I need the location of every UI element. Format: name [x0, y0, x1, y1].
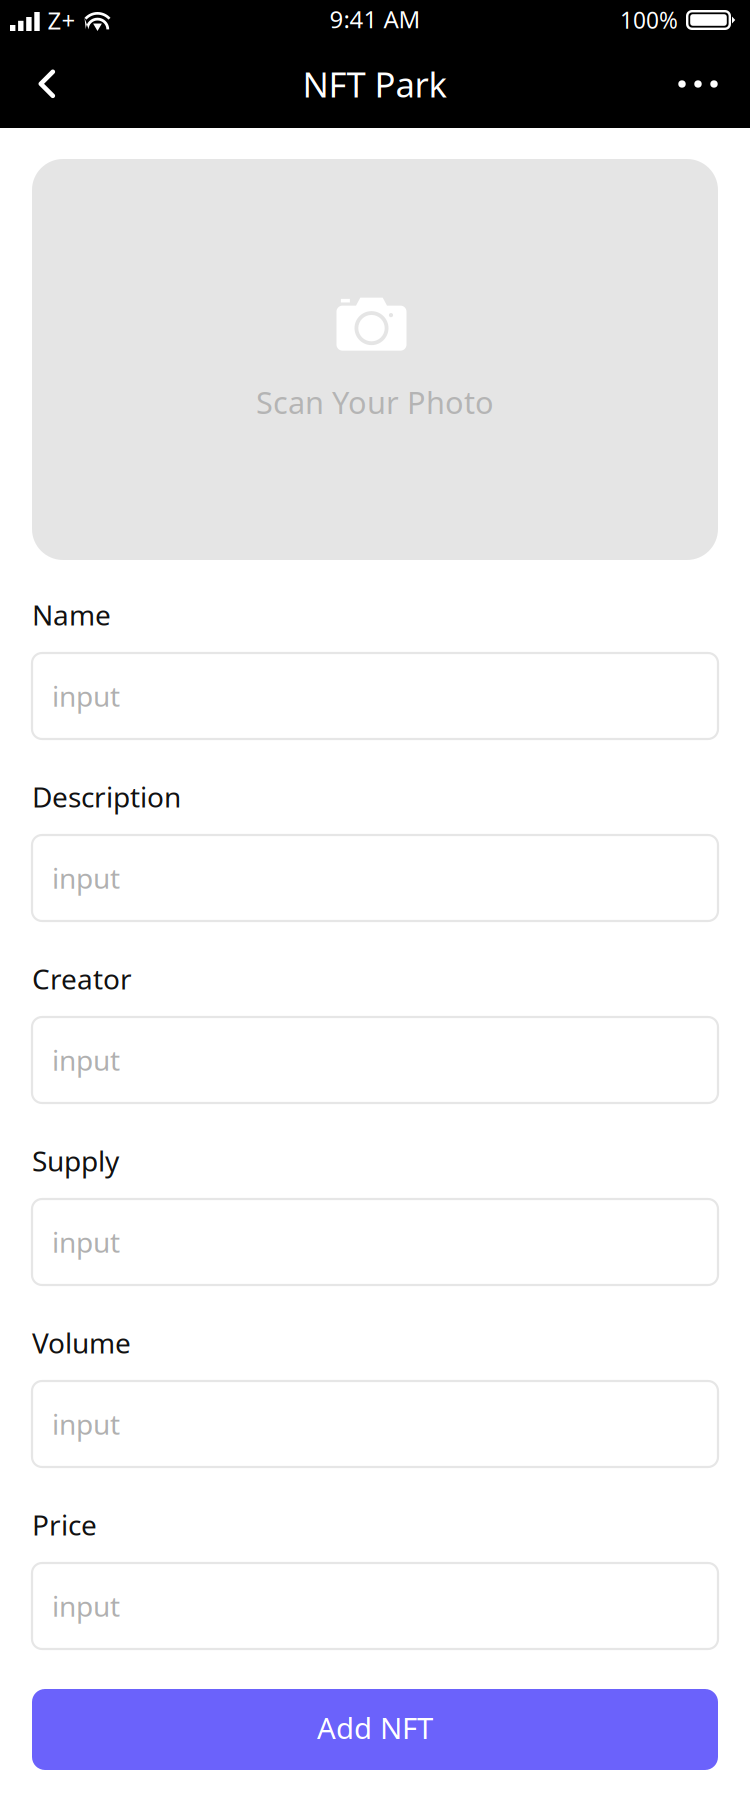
staticText: input	[52, 1041, 120, 1079]
button[interactable]: Scan Your Photo	[32, 159, 718, 560]
staticText: input	[52, 677, 120, 715]
staticText: input	[52, 859, 120, 897]
staticText: Z+	[47, 4, 75, 36]
staticText: 9:41 AM	[329, 3, 420, 35]
button[interactable]: input	[32, 835, 718, 921]
button[interactable]: Back	[18, 52, 76, 124]
staticText: NFT Park	[302, 61, 447, 107]
staticText: Name	[32, 596, 111, 633]
staticText: input	[52, 1223, 120, 1261]
button[interactable]: Add NFT	[32, 1689, 718, 1770]
button[interactable]: input	[32, 1199, 718, 1285]
staticText: Volume	[32, 1324, 131, 1361]
button[interactable]: input	[32, 1017, 718, 1103]
staticText: Price	[32, 1506, 97, 1543]
button[interactable]: More options	[669, 52, 727, 124]
button[interactable]: input	[32, 1563, 718, 1649]
staticText: Supply	[32, 1142, 119, 1179]
staticText: input	[52, 1405, 120, 1443]
staticText: input	[52, 1587, 120, 1625]
staticText: Scan Your Photo	[256, 382, 494, 422]
staticText: Creator	[32, 960, 132, 997]
staticText: Description	[32, 778, 181, 815]
staticText: 100%	[620, 5, 678, 35]
button[interactable]: input	[32, 1381, 718, 1467]
button[interactable]: input	[32, 653, 718, 739]
staticText: Add NFT	[317, 1708, 433, 1747]
